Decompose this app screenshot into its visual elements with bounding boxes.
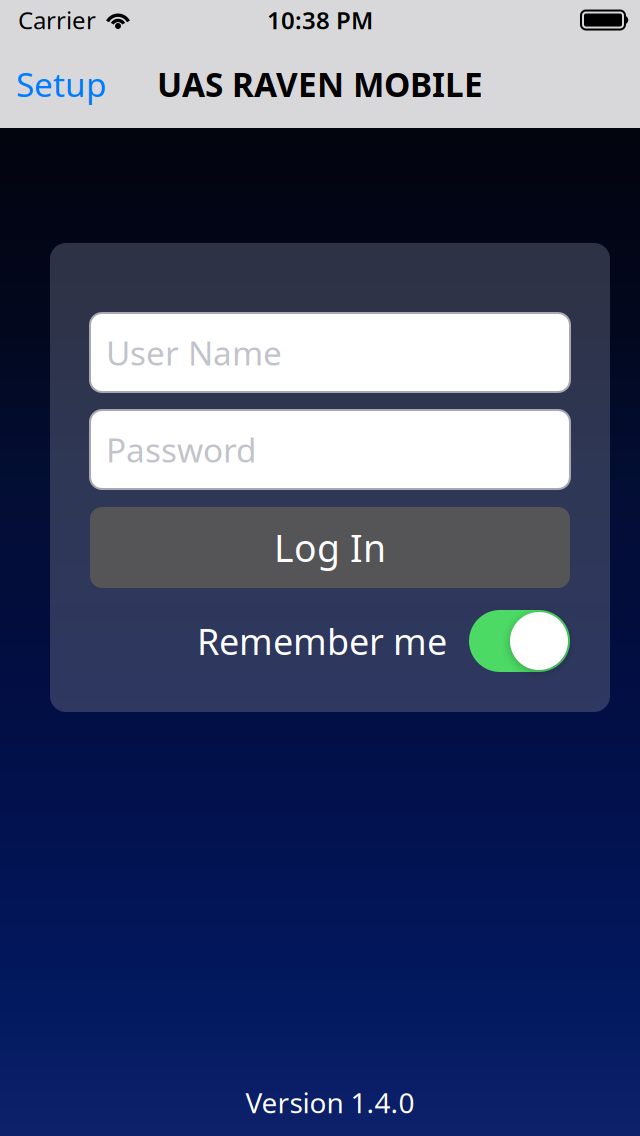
staticText: 10:38 PM [267, 4, 373, 36]
button[interactable]: User Name [90, 313, 570, 392]
staticText: Password [106, 427, 257, 472]
staticText: UAS RAVEN MOBILE [157, 62, 483, 106]
staticText: Version 1.4.0 [245, 1084, 414, 1121]
button[interactable]: Log In [90, 507, 570, 588]
button[interactable]: Remember me [469, 610, 570, 672]
staticText: Setup [16, 62, 107, 106]
staticText: Remember me [197, 617, 447, 665]
button[interactable]: Setup [16, 62, 107, 106]
staticText: User Name [106, 330, 282, 375]
staticText: Log In [274, 523, 386, 572]
staticText: Carrier [18, 4, 96, 36]
button[interactable]: Password [90, 410, 570, 489]
